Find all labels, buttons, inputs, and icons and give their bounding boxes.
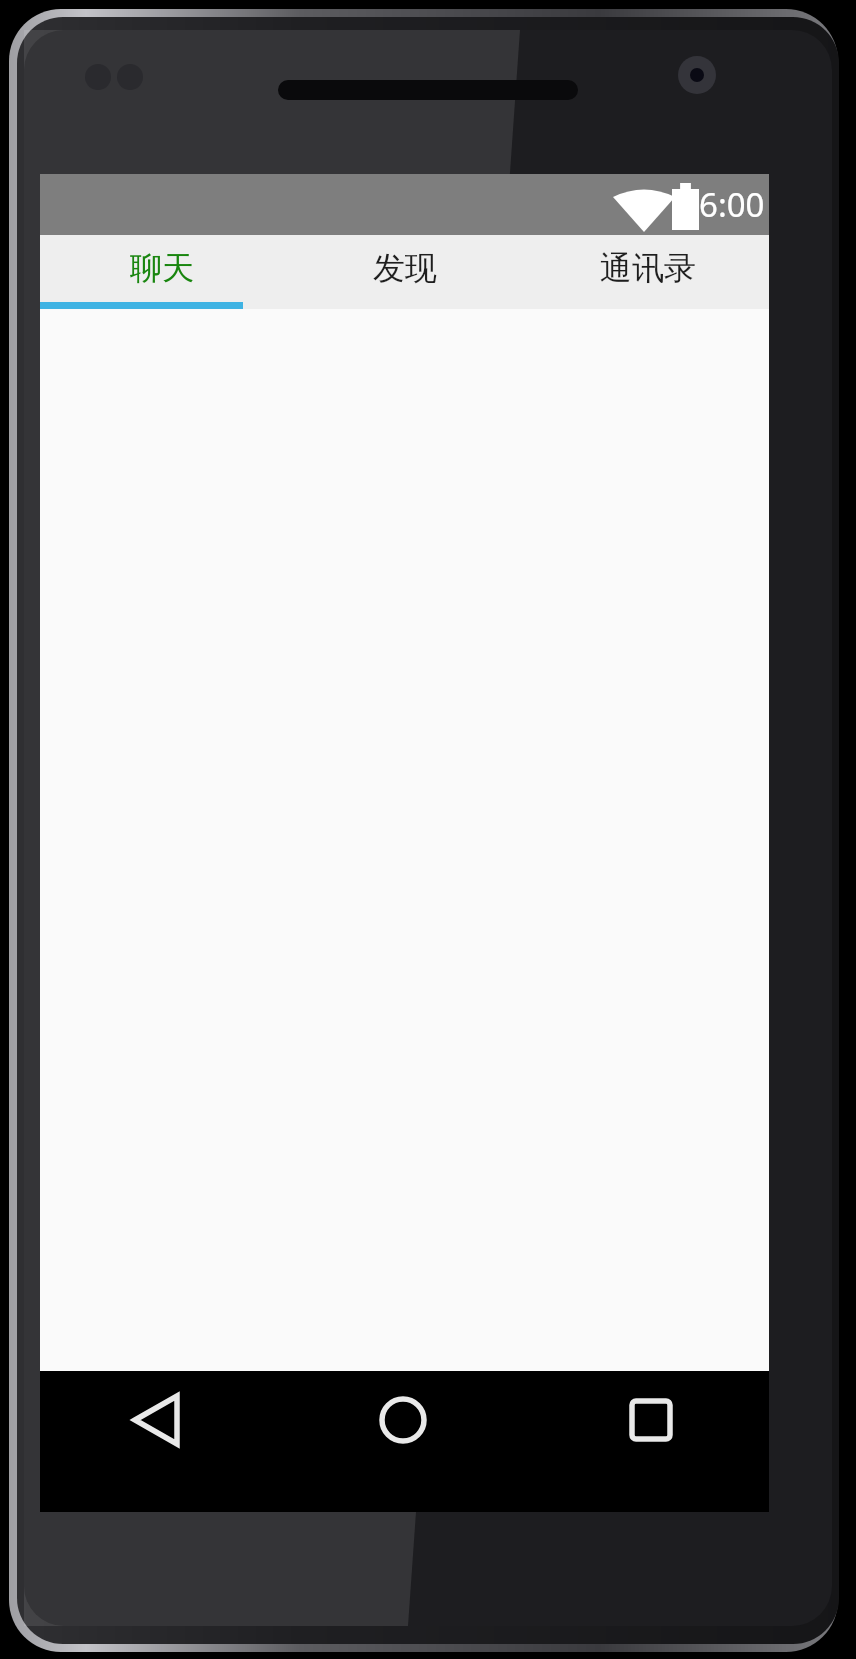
staticText: 聊天 xyxy=(130,248,194,288)
button[interactable]: Recent apps xyxy=(526,1371,769,1512)
button[interactable]: 发现 xyxy=(283,235,526,309)
staticText: 6:00 xyxy=(699,182,765,227)
button[interactable]: 通讯录 xyxy=(526,235,769,309)
staticText: 发现 xyxy=(373,248,437,288)
staticText: 通讯录 xyxy=(600,248,696,288)
button[interactable]: 聊天 xyxy=(40,235,283,309)
button[interactable]: Home xyxy=(283,1371,526,1512)
button[interactable]: Back xyxy=(40,1371,283,1512)
